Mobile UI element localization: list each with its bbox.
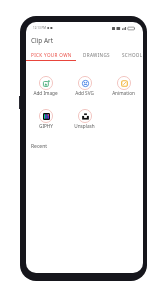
staticText: Animation — [112, 90, 135, 96]
button[interactable]: GIPHY — [26, 109, 65, 129]
button[interactable]: DRAWINGS — [76, 50, 116, 60]
staticText: Add Image — [33, 90, 58, 96]
button[interactable]: PICK YOUR OWN — [26, 50, 76, 60]
button[interactable]: SCHOOL — [116, 50, 143, 60]
button[interactable]: Animation — [104, 76, 143, 96]
staticText: GIPHY — [39, 123, 53, 129]
staticText: SCHOOL — [122, 52, 143, 58]
staticText: Clip Art — [31, 36, 53, 45]
staticText: Unsplash — [74, 123, 95, 129]
button[interactable]: Add Image — [26, 76, 65, 96]
staticText: PICK YOUR OWN — [31, 52, 72, 58]
button[interactable]: Add SVG — [65, 76, 104, 96]
staticText: DRAWINGS — [83, 52, 110, 58]
staticText: Add SVG — [75, 90, 94, 96]
staticText: Recent — [31, 143, 48, 150]
staticText: 12:13 PM — [33, 26, 46, 30]
button[interactable]: Unsplash — [65, 109, 104, 129]
